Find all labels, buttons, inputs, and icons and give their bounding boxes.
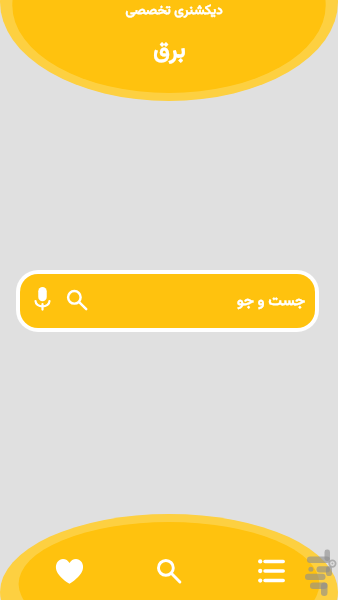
- staticText: جست و جو: [237, 290, 306, 313]
- staticText: برق: [153, 32, 186, 70]
- staticText: دیکشنری تخصصی: [125, 0, 223, 21]
- other: Search: [66, 289, 88, 311]
- button[interactable]: Search: [147, 549, 191, 593]
- other: Voice search: [34, 287, 51, 310]
- button[interactable]: Favorites: [47, 549, 91, 593]
- button[interactable]: Voice search: [20, 274, 315, 328]
- button[interactable]: Word list: [249, 549, 293, 593]
